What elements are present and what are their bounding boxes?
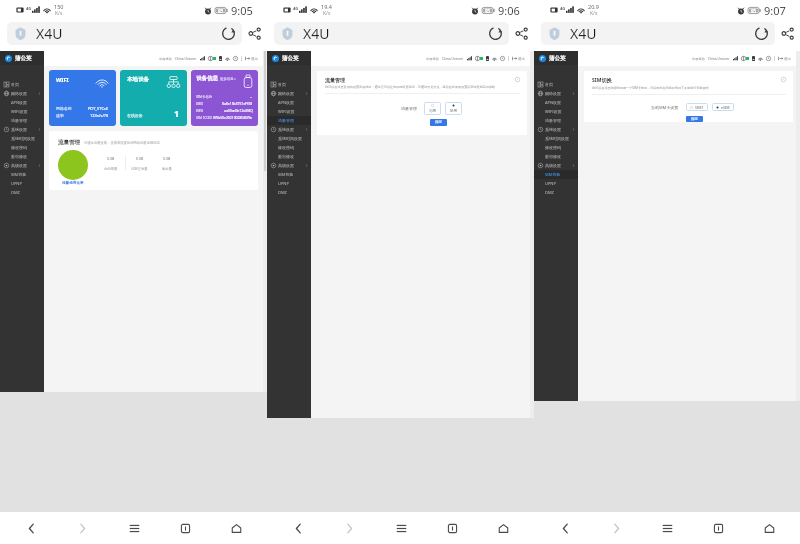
button[interactable]: UPNP	[0, 179, 44, 188]
button[interactable]: Forward	[329, 512, 369, 544]
button[interactable]: SIM切换	[534, 170, 578, 179]
button[interactable]: 重启修改	[267, 152, 311, 161]
staticText: 0.0B	[107, 156, 115, 161]
button[interactable]: 退出	[778, 56, 791, 61]
button[interactable]: DMZ	[534, 188, 578, 197]
button[interactable]: 系统时间设置	[267, 134, 311, 143]
staticText: APN设置	[278, 100, 295, 105]
button[interactable]: 保存	[430, 119, 447, 126]
button[interactable]: 本地设备	[120, 70, 187, 126]
button[interactable]: Home	[483, 512, 523, 544]
button[interactable]: Site info	[274, 22, 509, 45]
button[interactable]: 流量管理	[267, 116, 311, 125]
staticText: 高级设置	[11, 163, 27, 168]
button[interactable]: 修改密码	[267, 143, 311, 152]
staticText: 网络设置	[11, 91, 27, 96]
button[interactable]: 退出	[245, 56, 258, 61]
button[interactable]: Menu	[114, 512, 154, 544]
button[interactable]: 高级设置	[534, 161, 578, 170]
button[interactable]: APN设置	[267, 98, 311, 107]
button[interactable]: Home	[749, 512, 789, 544]
button[interactable]: Reload	[218, 23, 239, 44]
staticText: 20.9	[588, 3, 599, 10]
staticText: DMZ	[278, 190, 287, 195]
button[interactable]: 保存	[686, 116, 703, 122]
staticText: 流量管理	[325, 77, 345, 83]
button[interactable]: Help	[781, 77, 786, 82]
button[interactable]: DMZ	[267, 188, 311, 197]
button[interactable]: Help	[515, 77, 520, 82]
button[interactable]: 重启修改	[0, 152, 44, 161]
button[interactable]: Menu	[647, 512, 687, 544]
button[interactable]: 网络设置	[267, 89, 311, 98]
button[interactable]: WIFI设置	[534, 107, 578, 116]
button[interactable]: Site info	[541, 22, 775, 45]
button[interactable]: WIFI设置	[0, 107, 44, 116]
button[interactable]: Share	[775, 20, 800, 46]
staticText: 95	[485, 8, 491, 14]
button[interactable]: SIM1	[686, 103, 708, 111]
button[interactable]: Tabs	[698, 512, 738, 544]
button[interactable]: 系统设置	[534, 125, 578, 134]
button[interactable]: Home	[216, 512, 256, 544]
button[interactable]: 设备信息	[191, 70, 258, 126]
button[interactable]: 退出	[512, 56, 525, 61]
button[interactable]: APN设置	[0, 98, 44, 107]
button[interactable]: 流量管理	[0, 116, 44, 125]
staticText: 系统设置	[278, 127, 294, 132]
staticText: 95	[751, 8, 757, 14]
button[interactable]: Site info	[7, 22, 242, 45]
button[interactable]: 系统设置	[0, 125, 44, 134]
button[interactable]: UPNP	[534, 179, 578, 188]
staticText: 系统时间设置	[545, 136, 569, 141]
staticText: 4G	[560, 6, 566, 11]
button[interactable]: Reload	[485, 23, 506, 44]
staticText: China Unicom	[708, 57, 729, 61]
staticText: eSIM	[721, 105, 730, 110]
staticText: WIFI设置	[11, 109, 28, 114]
button[interactable]: 高级设置	[0, 161, 44, 170]
staticText: SIM切换	[11, 172, 27, 177]
button[interactable]: 启用	[424, 102, 441, 115]
button[interactable]: 首页	[267, 80, 311, 89]
button[interactable]: 高级设置	[267, 161, 311, 170]
button[interactable]: WIFI设置	[267, 107, 311, 116]
button[interactable]: 修改密码	[534, 143, 578, 152]
button[interactable]: 系统时间设置	[0, 134, 44, 143]
button[interactable]: Tabs	[432, 512, 472, 544]
button[interactable]: Tabs	[165, 512, 205, 544]
button[interactable]: Reload	[751, 23, 772, 44]
button[interactable]: WIFI	[49, 70, 116, 126]
button[interactable]: Share	[242, 20, 267, 46]
staticText: 流量管理	[545, 118, 561, 123]
button[interactable]: Menu	[381, 512, 421, 544]
button[interactable]: APN设置	[534, 98, 578, 107]
button[interactable]	[58, 150, 88, 180]
button[interactable]: 修改密码	[0, 143, 44, 152]
button[interactable]: UPNP	[267, 179, 311, 188]
button[interactable]: Back	[278, 512, 318, 544]
staticText: 剩余量	[162, 167, 172, 171]
button[interactable]: eSIM	[712, 103, 734, 111]
button[interactable]: 网络设置	[0, 89, 44, 98]
staticText: 流量使用比率	[62, 181, 84, 186]
button[interactable]: Back	[545, 512, 585, 544]
button[interactable]: SIM切换	[267, 170, 311, 179]
button[interactable]: 重启修改	[534, 152, 578, 161]
button[interactable]: 首页	[534, 80, 578, 89]
staticText: APN设置	[11, 100, 28, 105]
button[interactable]: Forward	[596, 512, 636, 544]
staticText: APN设置	[545, 100, 562, 105]
button[interactable]: Back	[11, 512, 51, 544]
button[interactable]: 首页	[0, 80, 44, 89]
button[interactable]: 系统时间设置	[534, 134, 578, 143]
staticText: 系统设置	[11, 127, 27, 132]
button[interactable]: Share	[509, 20, 534, 46]
button[interactable]: Forward	[62, 512, 102, 544]
button[interactable]: DMZ	[0, 188, 44, 197]
button[interactable]: 网络设置	[534, 89, 578, 98]
button[interactable]: 系统设置	[267, 125, 311, 134]
button[interactable]: 禁用	[445, 102, 462, 115]
button[interactable]: 流量管理	[534, 116, 578, 125]
button[interactable]: SIM切换	[0, 170, 44, 179]
